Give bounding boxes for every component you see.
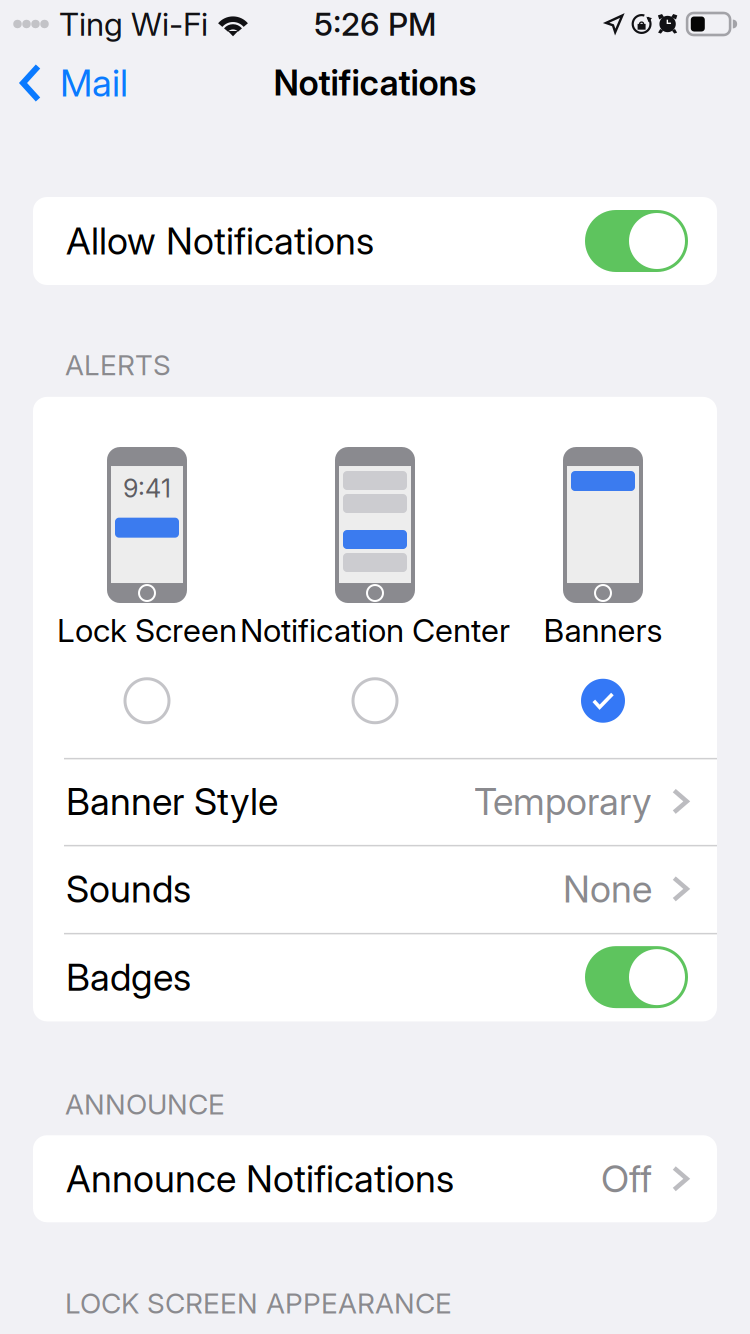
button[interactable]: Sounds — [33, 845, 717, 933]
staticText: LOCK SCREEN APPEARANCE — [65, 1286, 452, 1320]
staticText: Badges — [66, 954, 191, 1000]
staticText: 9:41 — [123, 473, 171, 504]
staticText: Lock Screen — [57, 611, 237, 650]
button[interactable]: Badges — [585, 946, 688, 1008]
button[interactable]: Banners — [489, 449, 717, 721]
staticText: Ting Wi-Fi — [59, 5, 208, 43]
staticText: Notification Center — [240, 611, 510, 650]
staticText: Notifications — [273, 62, 476, 104]
staticText: ANNOUNCE — [65, 1087, 225, 1121]
button[interactable]: Mail — [0, 50, 144, 116]
staticText: None — [563, 866, 652, 911]
staticText: Off — [601, 1156, 652, 1201]
staticText: Announce Notifications — [66, 1156, 454, 1201]
staticText: Banner Style — [66, 779, 278, 824]
staticText: ALERTS — [65, 348, 171, 382]
staticText: Temporary — [474, 779, 652, 824]
button[interactable]: Allow Notifications — [585, 210, 688, 272]
staticText: Sounds — [66, 866, 191, 911]
button[interactable]: Announce Notifications — [33, 1135, 717, 1222]
staticText: Allow Notifications — [66, 218, 374, 264]
staticText: 5:26 PM — [314, 5, 436, 43]
staticText: Mail — [60, 60, 128, 106]
button[interactable]: Banner Style — [33, 758, 717, 845]
button[interactable]: Notification Center — [261, 449, 489, 721]
button[interactable]: 9:41 — [33, 449, 261, 721]
staticText: Banners — [543, 611, 662, 650]
